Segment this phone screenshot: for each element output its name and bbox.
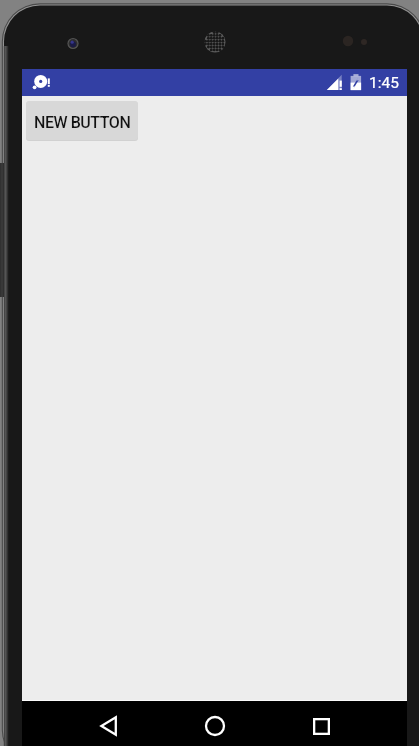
button[interactable]: Back xyxy=(80,701,136,746)
button[interactable]: NEW BUTTON xyxy=(26,101,138,140)
button[interactable]: Recent apps xyxy=(293,701,349,746)
staticText: 1:45 xyxy=(369,74,399,92)
button[interactable]: Home xyxy=(187,701,243,746)
staticText: NEW BUTTON xyxy=(34,113,131,132)
